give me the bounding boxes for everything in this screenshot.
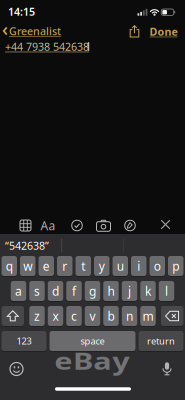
button[interactable]: Markup [124,219,136,231]
staticText: Done [149,24,177,39]
button[interactable]: Share [129,25,141,38]
staticText: g [89,283,96,299]
button[interactable]: 123 [1,330,46,351]
button[interactable]: p [168,255,183,276]
button[interactable]: v [85,305,100,326]
button[interactable]: space [49,330,135,351]
button[interactable]: Camera [96,219,111,231]
button[interactable]: k [140,280,156,301]
button[interactable]: Shift [1,305,24,326]
button[interactable]: x [48,305,63,326]
staticText: space [80,335,104,347]
button[interactable]: r [57,255,72,276]
button[interactable]: Insert table [19,219,31,231]
button[interactable]: c [66,305,82,326]
button[interactable]: t [75,255,91,276]
staticText: return [147,335,175,347]
staticText: x [52,308,58,324]
staticText: eBay [64,346,120,376]
button[interactable]: b [103,305,119,326]
button[interactable]: g [85,280,100,301]
staticText: j [128,283,131,299]
staticText: v [89,308,95,324]
staticText: q [6,258,13,274]
button[interactable]: Dismiss keyboard [160,219,170,229]
button[interactable]: “542638” [0,235,56,255]
staticText: u [117,258,124,274]
button[interactable]: z [29,305,45,326]
button[interactable]: o [149,255,165,276]
staticText: w [23,258,32,274]
button[interactable]: n [122,305,137,326]
staticText: h [107,283,114,299]
button[interactable]: return [138,330,183,351]
staticText: Greenalist [9,24,61,38]
staticText: t [81,258,85,274]
staticText: Aa [40,217,55,233]
staticText: y [99,258,105,274]
staticText: k [145,283,151,299]
staticText: b [107,308,114,324]
staticText: +44 7938 542638 [5,39,89,54]
button[interactable]: Checklist [71,219,83,231]
staticText: i [137,258,140,274]
button[interactable]: Back [1,23,65,39]
staticText: 14:15 [8,4,35,19]
button[interactable]: e [38,255,54,276]
button[interactable]: i [131,255,146,276]
button[interactable]: m [140,305,156,326]
staticText: “542638” [5,238,49,253]
staticText: o [154,258,161,274]
staticText: l [165,283,168,299]
button[interactable]: d [48,280,63,301]
button[interactable]: Done [149,24,177,39]
staticText: f [72,283,76,299]
staticText: a [15,283,22,299]
button[interactable]: l [159,280,174,301]
staticText: e [43,258,50,274]
button[interactable]: q [1,255,17,276]
button[interactable]: h [103,280,119,301]
button[interactable]: w [20,255,35,276]
button[interactable]: s [29,280,45,301]
staticText: d [52,283,59,299]
staticText: n [126,308,133,324]
button[interactable]: Text formatting [40,217,55,233]
button[interactable]: u [112,255,128,276]
staticText: 123 [16,335,31,347]
staticText: p [172,258,179,274]
staticText: m [142,308,153,324]
button[interactable]: Dictation [162,361,172,375]
button[interactable]: a [11,280,26,301]
button[interactable]: Delete [161,305,183,326]
button[interactable]: j [122,280,137,301]
staticText: r [62,258,67,274]
button[interactable]: y [94,255,109,276]
staticText: s [34,283,40,299]
staticText: z [34,308,40,324]
button[interactable]: Emoji [10,362,23,375]
button[interactable]: f [66,280,82,301]
staticText: c [71,308,77,324]
